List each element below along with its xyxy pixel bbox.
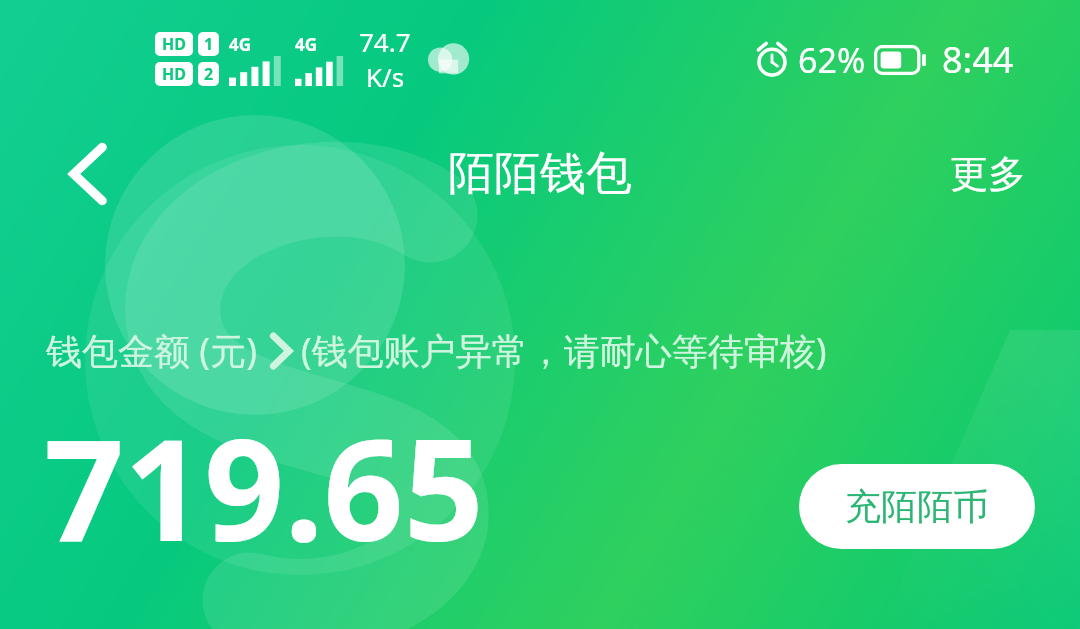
staticText: 719.65 [44, 391, 484, 582]
staticText: HD [162, 33, 186, 55]
staticText: 1 [204, 33, 214, 55]
staticText: 钱包金额 (元) [46, 326, 257, 375]
button[interactable]: 返回 [52, 138, 124, 210]
staticText: 4G [295, 33, 318, 56]
button[interactable]: 钱包金额 (元) [46, 326, 827, 375]
button[interactable]: 充陌陌币 [799, 464, 1035, 549]
staticText: 2 [204, 63, 214, 85]
staticText: 74.7 [359, 24, 411, 59]
staticText: 8:44 [942, 35, 1014, 84]
staticText: 更多 [950, 150, 1026, 198]
staticText: 陌陌钱包 [448, 145, 632, 203]
staticText: 充陌陌币 [845, 484, 989, 529]
staticText: (钱包账户异常，请耐心等待审核) [301, 326, 827, 375]
staticText: HD [162, 63, 186, 85]
staticText: 4G [229, 33, 252, 56]
button[interactable]: 更多 [942, 140, 1034, 208]
staticText: 62% [798, 37, 866, 83]
staticText: K/s [366, 59, 405, 94]
